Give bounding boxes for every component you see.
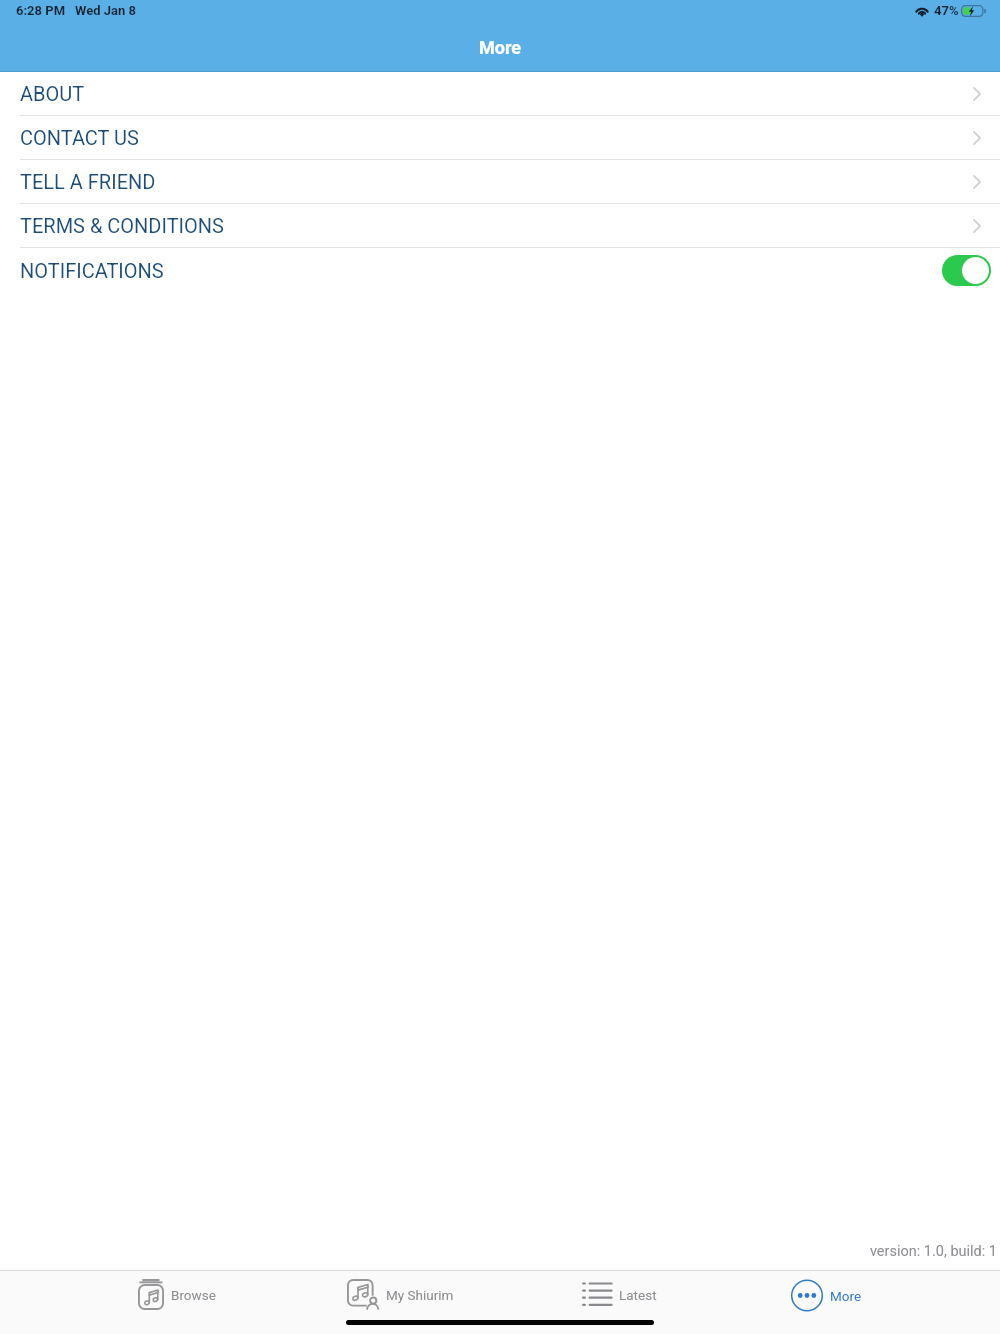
staticText: NOTIFICATIONS [20,259,164,282]
staticText: More [479,37,522,58]
staticText: More [830,1288,862,1304]
staticText: Latest [619,1287,657,1303]
button[interactable]: TELL A FRIEND [0,160,1000,204]
staticText: 47% [934,3,959,18]
button[interactable]: My Shiurim [347,1279,454,1310]
staticText: TERMS & CONDITIONS [20,214,224,237]
button[interactable]: NOTIFICATIONS [0,248,1000,292]
button[interactable]: Browse [138,1279,216,1310]
staticText: TELL A FRIEND [20,170,156,193]
staticText: CONTACT US [20,126,139,149]
button[interactable]: Latest [582,1279,657,1310]
staticText: ABOUT [20,82,85,105]
button[interactable]: Notifications toggle [942,255,991,286]
button[interactable]: TERMS & CONDITIONS [0,204,1000,248]
staticText: My Shiurim [386,1287,454,1303]
staticText: Browse [171,1287,216,1303]
staticText: 6:28 PM [16,3,66,18]
button[interactable]: ABOUT [0,72,1000,116]
staticText: version: 1.0, build: 1 [0,1243,997,1260]
button[interactable]: More [791,1279,862,1312]
staticText: Wed Jan 8 [75,3,136,18]
button[interactable]: CONTACT US [0,116,1000,160]
